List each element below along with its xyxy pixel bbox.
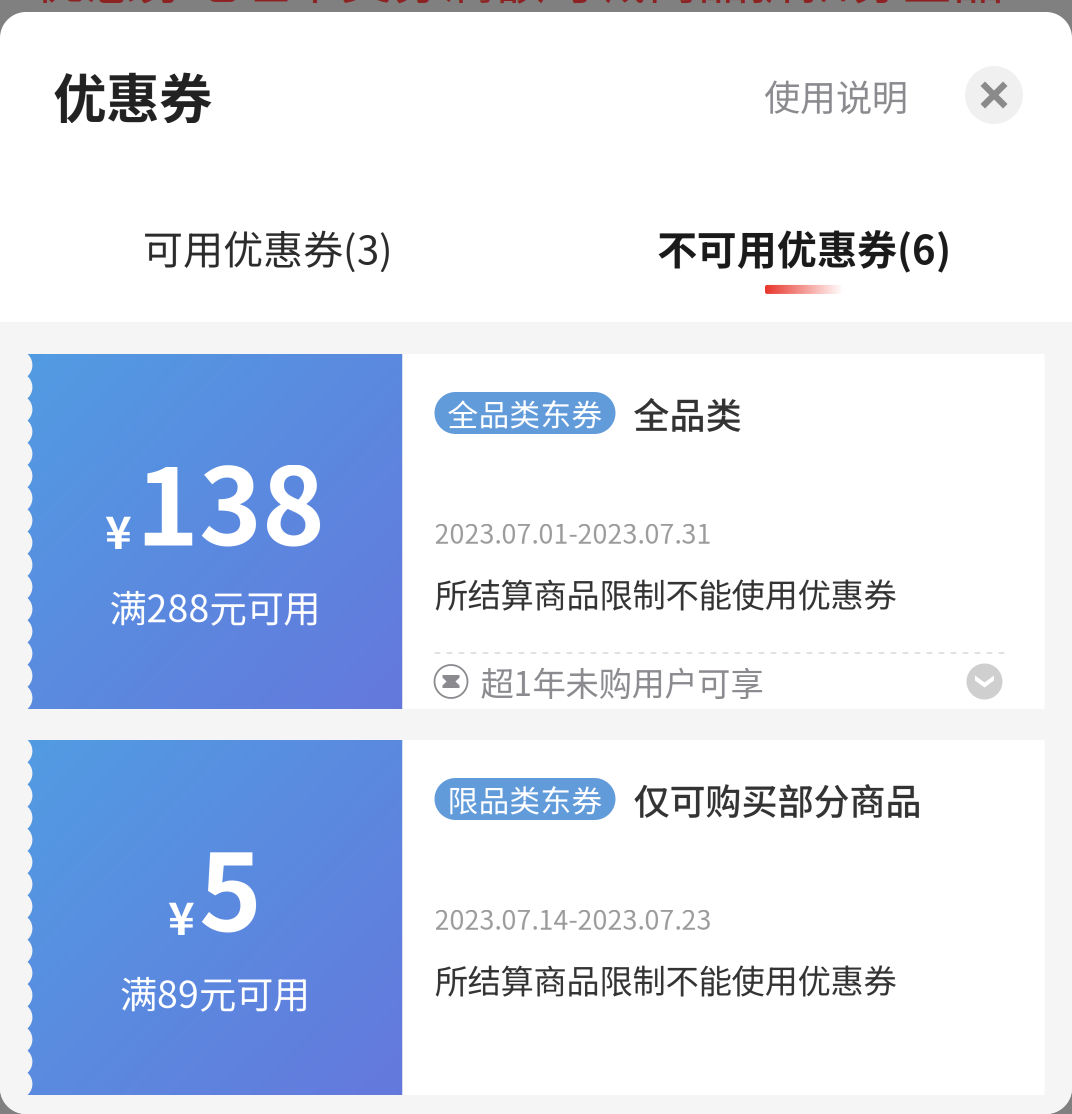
- staticText: 优惠券地址中奖券满额可减商品折扣券全品: [35, 0, 1004, 14]
- button[interactable]: 可用优惠券(3): [0, 178, 536, 322]
- button[interactable]: ¥: [27, 740, 1044, 1095]
- staticText: 使用说明: [764, 69, 908, 121]
- button[interactable]: 不可用优惠券(6): [536, 178, 1072, 322]
- staticText: 满288元可用: [109, 579, 320, 633]
- staticText: 限品类东券: [447, 777, 602, 821]
- staticText: 可用优惠券(3): [143, 218, 393, 276]
- button[interactable]: ¥: [27, 354, 1044, 709]
- staticText: 全品类东券: [447, 391, 602, 435]
- staticText: ¥: [105, 497, 132, 562]
- staticText: 不可用优惠券(6): [657, 218, 951, 276]
- staticText: 全品类: [633, 387, 741, 439]
- button[interactable]: 使用说明: [764, 69, 908, 121]
- staticText: 所结算商品限制不能使用优惠券: [434, 569, 896, 617]
- staticText: 138: [136, 422, 325, 576]
- staticText: 满89元可用: [120, 965, 310, 1019]
- staticText: 2023.07.14-2023.07.23: [434, 899, 711, 937]
- button[interactable]: Close: [965, 66, 1023, 124]
- staticText: 优惠券: [53, 56, 212, 134]
- button[interactable]: Show coupon details: [966, 663, 1002, 699]
- staticText: 2023.07.01-2023.07.31: [434, 513, 711, 551]
- staticText: 仅可购买部分商品: [633, 773, 921, 825]
- staticText: ¥: [168, 883, 195, 948]
- staticText: 所结算商品限制不能使用优惠券: [434, 955, 896, 1003]
- staticText: 超1年未购用户可享: [480, 657, 763, 706]
- staticText: 5: [199, 808, 262, 962]
